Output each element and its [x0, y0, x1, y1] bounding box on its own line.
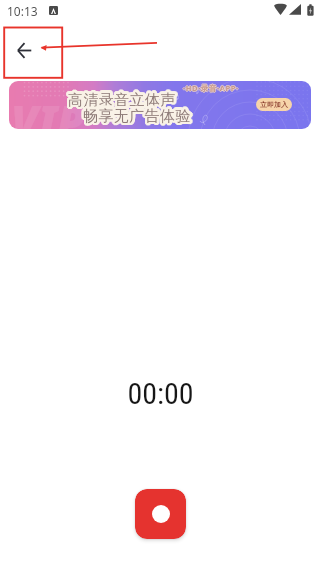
staticText: 高清录音立体声: [66, 90, 174, 109]
staticText: ·HD·录音·APP·: [184, 83, 240, 93]
staticText: 高清录音立体声: [70, 90, 178, 109]
staticText: VIP: [11, 91, 85, 129]
staticText: 畅享无广告体验: [84, 108, 192, 127]
staticText: 高清录音立体声: [66, 91, 174, 110]
staticText: 畅享无广告体验: [82, 109, 190, 128]
staticText: ·HD·录音·APP·: [182, 83, 238, 93]
button[interactable]: VIP: [9, 81, 311, 129]
staticText: ·HD·录音·APP·: [183, 82, 239, 92]
staticText: 高清录音立体声: [66, 92, 174, 111]
staticText: 畅享无广告体验: [85, 106, 193, 125]
staticText: 畅享无广告体验: [82, 108, 190, 127]
staticText: ·HD·录音·APP·: [183, 84, 239, 94]
staticText: ·HD·录音·APP·: [183, 83, 239, 93]
staticText: 畅享无广告体验: [82, 106, 190, 125]
staticText: 畅享无广告体验: [85, 108, 193, 127]
button[interactable]: Back: [8, 34, 40, 66]
staticText: 高清录音立体声: [69, 92, 177, 111]
staticText: 高清录音立体声: [67, 93, 175, 112]
staticText: 畅享无广告体验: [82, 105, 190, 124]
staticText: 畅享无广告体验: [84, 105, 192, 124]
button[interactable]: 立即加入: [256, 98, 292, 111]
staticText: 畅享无广告体验: [81, 108, 189, 127]
staticText: 畅享无广告体验: [84, 106, 192, 125]
staticText: 高清录音立体声: [70, 91, 178, 110]
staticText: 畅享无广告体验: [83, 105, 191, 124]
staticText: 高清录音立体声: [69, 93, 177, 112]
staticText: 高清录音立体声: [70, 92, 178, 111]
staticText: 高清录音立体声: [67, 90, 175, 109]
staticText: 畅享无广告体验: [85, 107, 193, 126]
staticText: 畅享无广告体验: [81, 107, 189, 126]
staticText: 高清录音立体声: [69, 90, 177, 109]
staticText: 00:00: [127, 376, 194, 411]
button[interactable]: Record: [135, 489, 186, 539]
staticText: 高清录音立体声: [67, 92, 175, 111]
staticText: 高清录音立体声: [69, 89, 177, 108]
staticText: 高清录音立体声: [68, 93, 176, 112]
staticText: 10:13: [7, 3, 38, 19]
staticText: 畅享无广告体验: [83, 109, 191, 128]
staticText: 立即加入: [260, 100, 288, 109]
staticText: 高清录音立体声: [68, 89, 176, 108]
staticText: 畅享无广告体验: [81, 106, 189, 125]
staticText: 高清录音立体声: [67, 89, 175, 108]
staticText: 高清录音立体声: [68, 91, 176, 110]
staticText: 畅享无广告体验: [84, 109, 192, 128]
staticText: 畅享无广告体验: [83, 107, 191, 126]
